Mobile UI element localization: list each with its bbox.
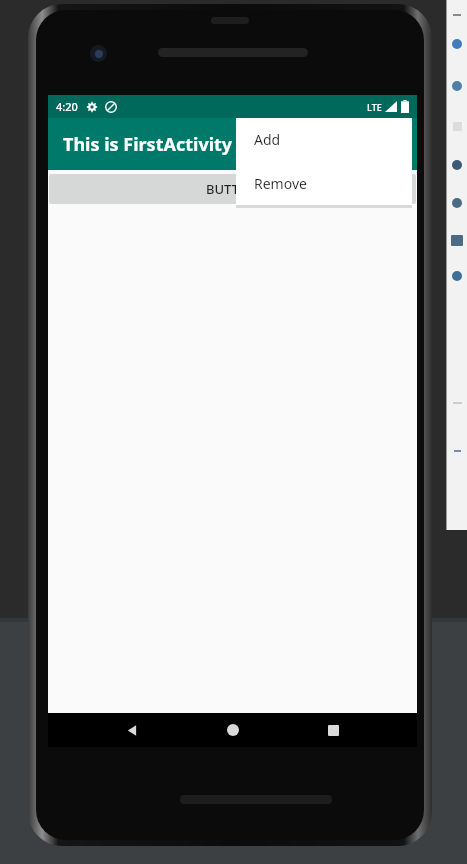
staticText: 4:20: [56, 99, 78, 114]
button[interactable]: Back: [115, 713, 149, 747]
button[interactable]: Add: [236, 118, 412, 161]
staticText: Remove: [254, 174, 307, 193]
button[interactable]: BUTTON: [49, 174, 416, 204]
button[interactable]: Recent apps: [316, 713, 350, 747]
button[interactable]: Remove: [236, 161, 412, 205]
staticText: This is FirstActivity: [63, 132, 233, 157]
staticText: Add: [254, 130, 281, 149]
button[interactable]: Home: [216, 713, 250, 747]
staticText: BUTTON: [206, 180, 259, 198]
staticText: LTE: [367, 101, 382, 113]
